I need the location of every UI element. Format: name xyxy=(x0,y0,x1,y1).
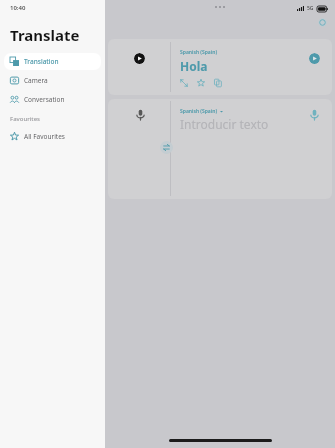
staticText: Introducir texto xyxy=(180,116,269,132)
staticText: Spanish (Spain) xyxy=(180,108,218,115)
button[interactable]: Microphone target xyxy=(310,109,319,121)
button[interactable]: Expand xyxy=(180,79,188,87)
staticText: 5G xyxy=(307,5,314,12)
button[interactable]: Copy xyxy=(214,79,222,87)
button[interactable]: Settings xyxy=(318,18,327,27)
button[interactable]: Camera xyxy=(4,72,101,89)
button[interactable]: Play translation audio xyxy=(309,53,320,64)
button[interactable]: Translation xyxy=(4,53,101,70)
staticText: Hola xyxy=(180,58,208,74)
staticText: Favourites xyxy=(10,115,41,123)
staticText: Conversation xyxy=(24,95,65,104)
staticText: Translation xyxy=(24,57,59,66)
staticText: Camera xyxy=(24,76,48,85)
button[interactable]: Conversation xyxy=(4,91,101,108)
staticText: Spanish (Spain) xyxy=(180,49,218,56)
staticText: All Favourites xyxy=(24,132,65,141)
button[interactable]: Swap languages xyxy=(160,141,173,154)
staticText: Translate xyxy=(10,25,80,45)
button[interactable]: Favourite xyxy=(197,79,205,87)
button[interactable]: Play source audio xyxy=(134,53,145,64)
button[interactable]: All Favourites xyxy=(4,128,101,145)
staticText: 10:40 xyxy=(10,4,26,12)
button[interactable]: Microphone source xyxy=(136,109,145,121)
